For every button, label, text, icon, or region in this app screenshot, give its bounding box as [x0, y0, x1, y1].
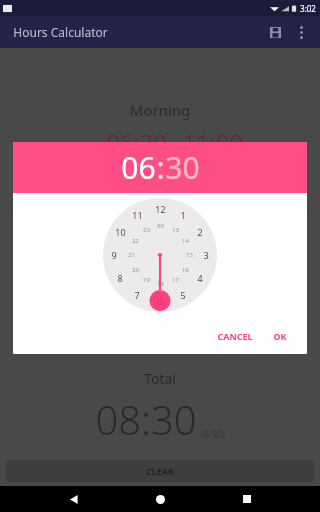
- staticText: (8.50): [201, 428, 225, 440]
- staticText: 11:00: [182, 126, 243, 159]
- button[interactable]: 06: [121, 147, 156, 188]
- staticText: 30: [165, 147, 200, 188]
- button[interactable]: Back: [61, 486, 87, 512]
- button[interactable]: 30: [165, 147, 200, 188]
- staticText: 08:30: [95, 392, 197, 446]
- staticText: CANCEL: [217, 330, 253, 342]
- staticText: 3:02: [300, 3, 316, 14]
- staticText: 17: [172, 276, 179, 284]
- staticText: 18: [157, 280, 164, 288]
- button[interactable]: Recents: [234, 486, 260, 512]
- staticText: 5: [180, 289, 186, 301]
- staticText: 4: [197, 272, 203, 284]
- staticText: 2: [197, 226, 203, 238]
- staticText: 14: [182, 237, 189, 245]
- staticText: 12: [155, 203, 166, 215]
- staticText: 19: [143, 276, 150, 284]
- staticText: 11: [132, 209, 143, 221]
- button[interactable]: Save: [262, 19, 288, 45]
- button[interactable]: More options: [288, 19, 314, 45]
- staticText: Morning: [0, 100, 320, 120]
- staticText: Total: [0, 369, 320, 388]
- staticText: OK: [273, 330, 287, 342]
- button[interactable]: OK: [267, 324, 293, 348]
- button[interactable]: Home: [147, 486, 173, 512]
- staticText: Hours Calculator: [13, 24, 108, 40]
- staticText: to: [167, 145, 182, 159]
- staticText: 3: [203, 249, 209, 261]
- staticText: 22: [132, 237, 139, 245]
- staticText: :: [156, 147, 165, 188]
- staticText: 00: [157, 222, 164, 230]
- button[interactable]: CANCEL: [211, 324, 259, 348]
- staticText: 16: [182, 266, 189, 274]
- staticText: 9: [111, 249, 117, 261]
- staticText: 15: [186, 251, 193, 259]
- staticText: 23: [143, 226, 150, 234]
- staticText: CLEAR: [146, 465, 174, 477]
- staticText: 06:30: [106, 126, 167, 159]
- staticText: 6: [157, 295, 163, 307]
- staticText: 21: [128, 251, 135, 259]
- staticText: 06: [121, 147, 156, 188]
- staticText: 8: [117, 272, 123, 284]
- staticText: 1: [180, 209, 186, 221]
- staticText: 10: [115, 226, 126, 238]
- staticText: 13: [172, 226, 179, 234]
- staticText: 20: [132, 266, 139, 274]
- staticText: 7: [134, 289, 140, 301]
